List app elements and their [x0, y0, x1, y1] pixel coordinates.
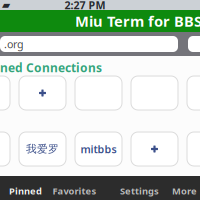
button[interactable]: mitbbs — [75, 132, 122, 166]
button[interactable]: Favorites — [42, 176, 107, 200]
staticText: Settings — [120, 185, 159, 197]
button[interactable]: Pinned — [0, 176, 42, 200]
button[interactable] — [131, 132, 178, 166]
button[interactable] — [187, 132, 200, 166]
button[interactable]: 我爱罗 — [19, 132, 66, 166]
button[interactable] — [187, 76, 200, 110]
staticText: 我爱罗 — [26, 142, 59, 155]
button[interactable]: Settings — [107, 176, 172, 200]
staticText: Pinned — [9, 185, 42, 197]
button[interactable] — [131, 76, 178, 110]
button[interactable]: More — [172, 176, 200, 200]
staticText: mitbbs — [80, 142, 116, 156]
staticText: 2:27 PM — [64, 0, 105, 12]
staticText: ▰ — [2, 0, 10, 11]
staticText: .org — [4, 37, 24, 51]
staticText: Favorites — [52, 185, 96, 197]
staticText: More — [172, 185, 197, 197]
staticText: Miu Term for BBS on — [75, 11, 200, 31]
button[interactable] — [0, 132, 10, 166]
button[interactable] — [75, 76, 122, 110]
button[interactable] — [0, 76, 10, 110]
button[interactable] — [19, 76, 66, 110]
staticText: ned Connections — [0, 59, 102, 75]
